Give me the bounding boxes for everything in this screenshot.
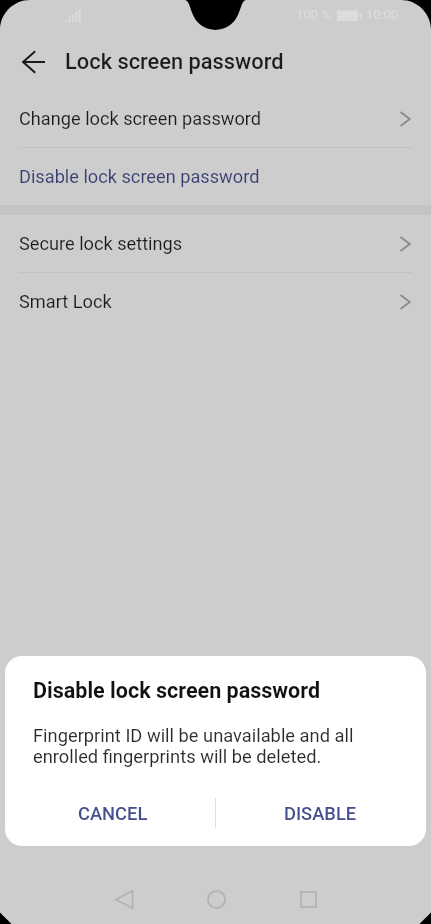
staticText: Smart Lock — [19, 291, 112, 312]
button[interactable]: Change lock screen password — [0, 90, 431, 147]
button[interactable]: Secure lock settings — [0, 215, 431, 272]
button[interactable]: Back — [92, 869, 156, 924]
staticText: Change lock screen password — [19, 108, 262, 129]
staticText: Fingerprint ID will be unavailable and a… — [33, 725, 373, 767]
staticText: CANCEL — [78, 803, 148, 824]
button[interactable]: Navigate up — [6, 34, 62, 90]
button[interactable]: DISABLE — [216, 792, 426, 834]
staticText: 10:00 — [366, 7, 399, 22]
staticText: Disable lock screen password — [19, 166, 260, 187]
staticText: Secure lock settings — [19, 233, 183, 254]
button[interactable]: Home — [184, 869, 248, 924]
button[interactable]: Disable lock screen password — [0, 148, 431, 205]
button[interactable]: CANCEL — [5, 792, 215, 834]
staticText: 100 % — [296, 7, 331, 22]
staticText: Disable lock screen password — [33, 678, 321, 703]
staticText: Lock screen password — [65, 49, 284, 75]
button[interactable]: Recent apps — [276, 869, 340, 924]
button[interactable]: Smart Lock — [0, 273, 431, 330]
staticText: DISABLE — [284, 803, 357, 824]
